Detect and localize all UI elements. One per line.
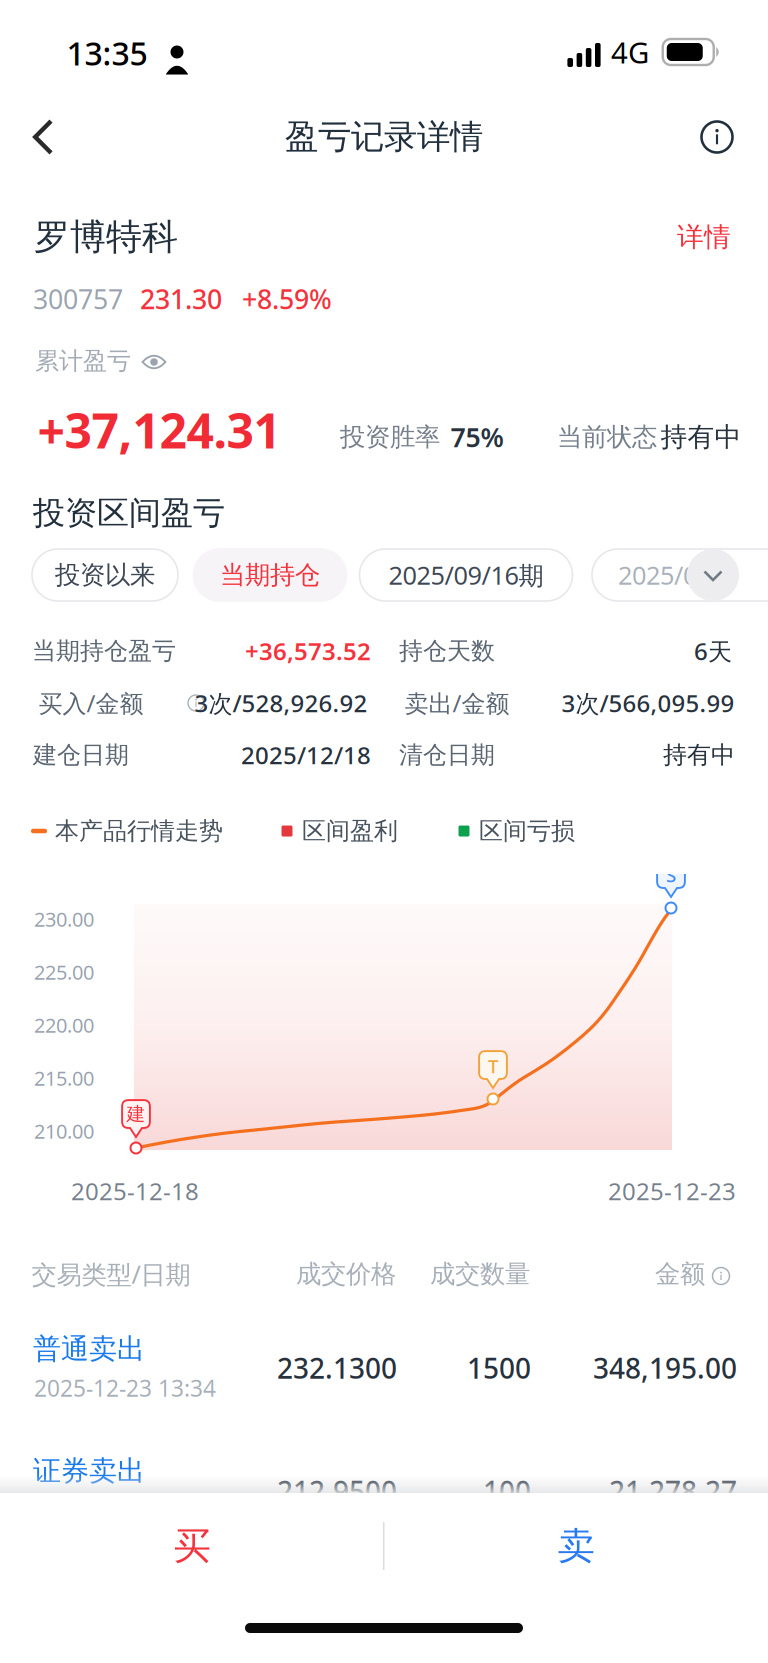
- staticText: 卖: [557, 1523, 594, 1569]
- staticText: 2025/0: [618, 558, 697, 592]
- staticText: 2025/12/18: [241, 739, 371, 771]
- staticText: 投资区间盈亏: [33, 493, 225, 533]
- staticText: 当期持仓: [220, 559, 320, 590]
- staticText: 普通卖出: [33, 1332, 145, 1366]
- staticText: 成交数量: [430, 1258, 530, 1289]
- staticText: 详情: [677, 221, 731, 253]
- staticText: 21,278.27: [609, 1472, 737, 1510]
- staticText: 交易类型/日期: [31, 1257, 190, 1291]
- staticText: 罗博特科: [34, 215, 178, 259]
- staticText: 232.1300: [277, 1349, 397, 1387]
- staticText: 卖出/金额: [404, 687, 509, 719]
- staticText: 证券卖出: [33, 1454, 145, 1488]
- button[interactable]: 当期持仓: [193, 549, 346, 601]
- staticText: 建仓日期: [33, 740, 129, 770]
- staticText: 累计盈亏: [35, 346, 131, 376]
- staticText: 225.00: [34, 959, 94, 985]
- staticText: T: [488, 1053, 498, 1078]
- staticText: 本产品行情走势: [55, 816, 223, 846]
- staticText: 300757: [33, 281, 123, 317]
- staticText: 13:35: [66, 32, 147, 74]
- staticText: 投资以来: [55, 559, 155, 590]
- staticText: 6天: [694, 635, 732, 667]
- staticText: 盈亏记录详情: [285, 116, 483, 157]
- staticText: 212.9500: [277, 1472, 397, 1510]
- staticText: 100: [483, 1472, 531, 1510]
- staticText: 成交价格: [296, 1258, 396, 1289]
- staticText: 区间盈利: [302, 816, 398, 846]
- staticText: 2025/09/16期: [388, 558, 543, 592]
- staticText: 建: [126, 1102, 145, 1125]
- staticText: 348,195.00: [593, 1349, 737, 1387]
- staticText: 当前状态: [557, 421, 657, 452]
- staticText: 投资胜率: [340, 421, 440, 452]
- button[interactable]: 卖: [384, 1496, 767, 1596]
- staticText: 金额: [655, 1258, 705, 1289]
- staticText: 1500: [467, 1349, 531, 1387]
- staticText: 清仓日期: [399, 740, 495, 770]
- staticText: 210.00: [34, 1118, 94, 1144]
- staticText: 4G: [611, 32, 649, 71]
- button[interactable]: 说明: [682, 100, 752, 174]
- staticText: 持有中: [660, 421, 741, 453]
- staticText: 75%: [450, 419, 503, 455]
- button[interactable]: 2025/09/16期: [359, 549, 572, 601]
- button[interactable]: 返回: [8, 100, 78, 174]
- staticText: 231.30: [140, 281, 222, 317]
- staticText: +8.59%: [242, 281, 332, 317]
- button[interactable]: 详情: [658, 209, 750, 265]
- staticText: 持仓天数: [399, 636, 495, 666]
- staticText: 3次/566,095.99: [561, 687, 734, 719]
- staticText: +36,573.52: [245, 635, 371, 667]
- staticText: 区间亏损: [479, 816, 575, 846]
- button[interactable]: 买: [0, 1496, 383, 1596]
- staticText: 230.00: [34, 906, 94, 932]
- staticText: +37,124.31: [37, 398, 280, 462]
- staticText: 2025-12-23 13:34: [34, 1373, 216, 1403]
- button[interactable]: 投资以来: [32, 549, 178, 601]
- staticText: 2025-12-18: [71, 1175, 199, 1207]
- staticText: 2025-12-23: [608, 1175, 736, 1207]
- staticText: 220.00: [34, 1012, 94, 1038]
- staticText: S: [666, 862, 676, 887]
- staticText: 持有中: [663, 740, 735, 770]
- staticText: 买: [173, 1523, 210, 1569]
- staticText: 3次/528,926.92: [194, 687, 367, 719]
- staticText: 买入/金额: [38, 687, 143, 719]
- staticText: 当期持仓盈亏: [32, 636, 176, 666]
- staticText: 215.00: [34, 1065, 94, 1091]
